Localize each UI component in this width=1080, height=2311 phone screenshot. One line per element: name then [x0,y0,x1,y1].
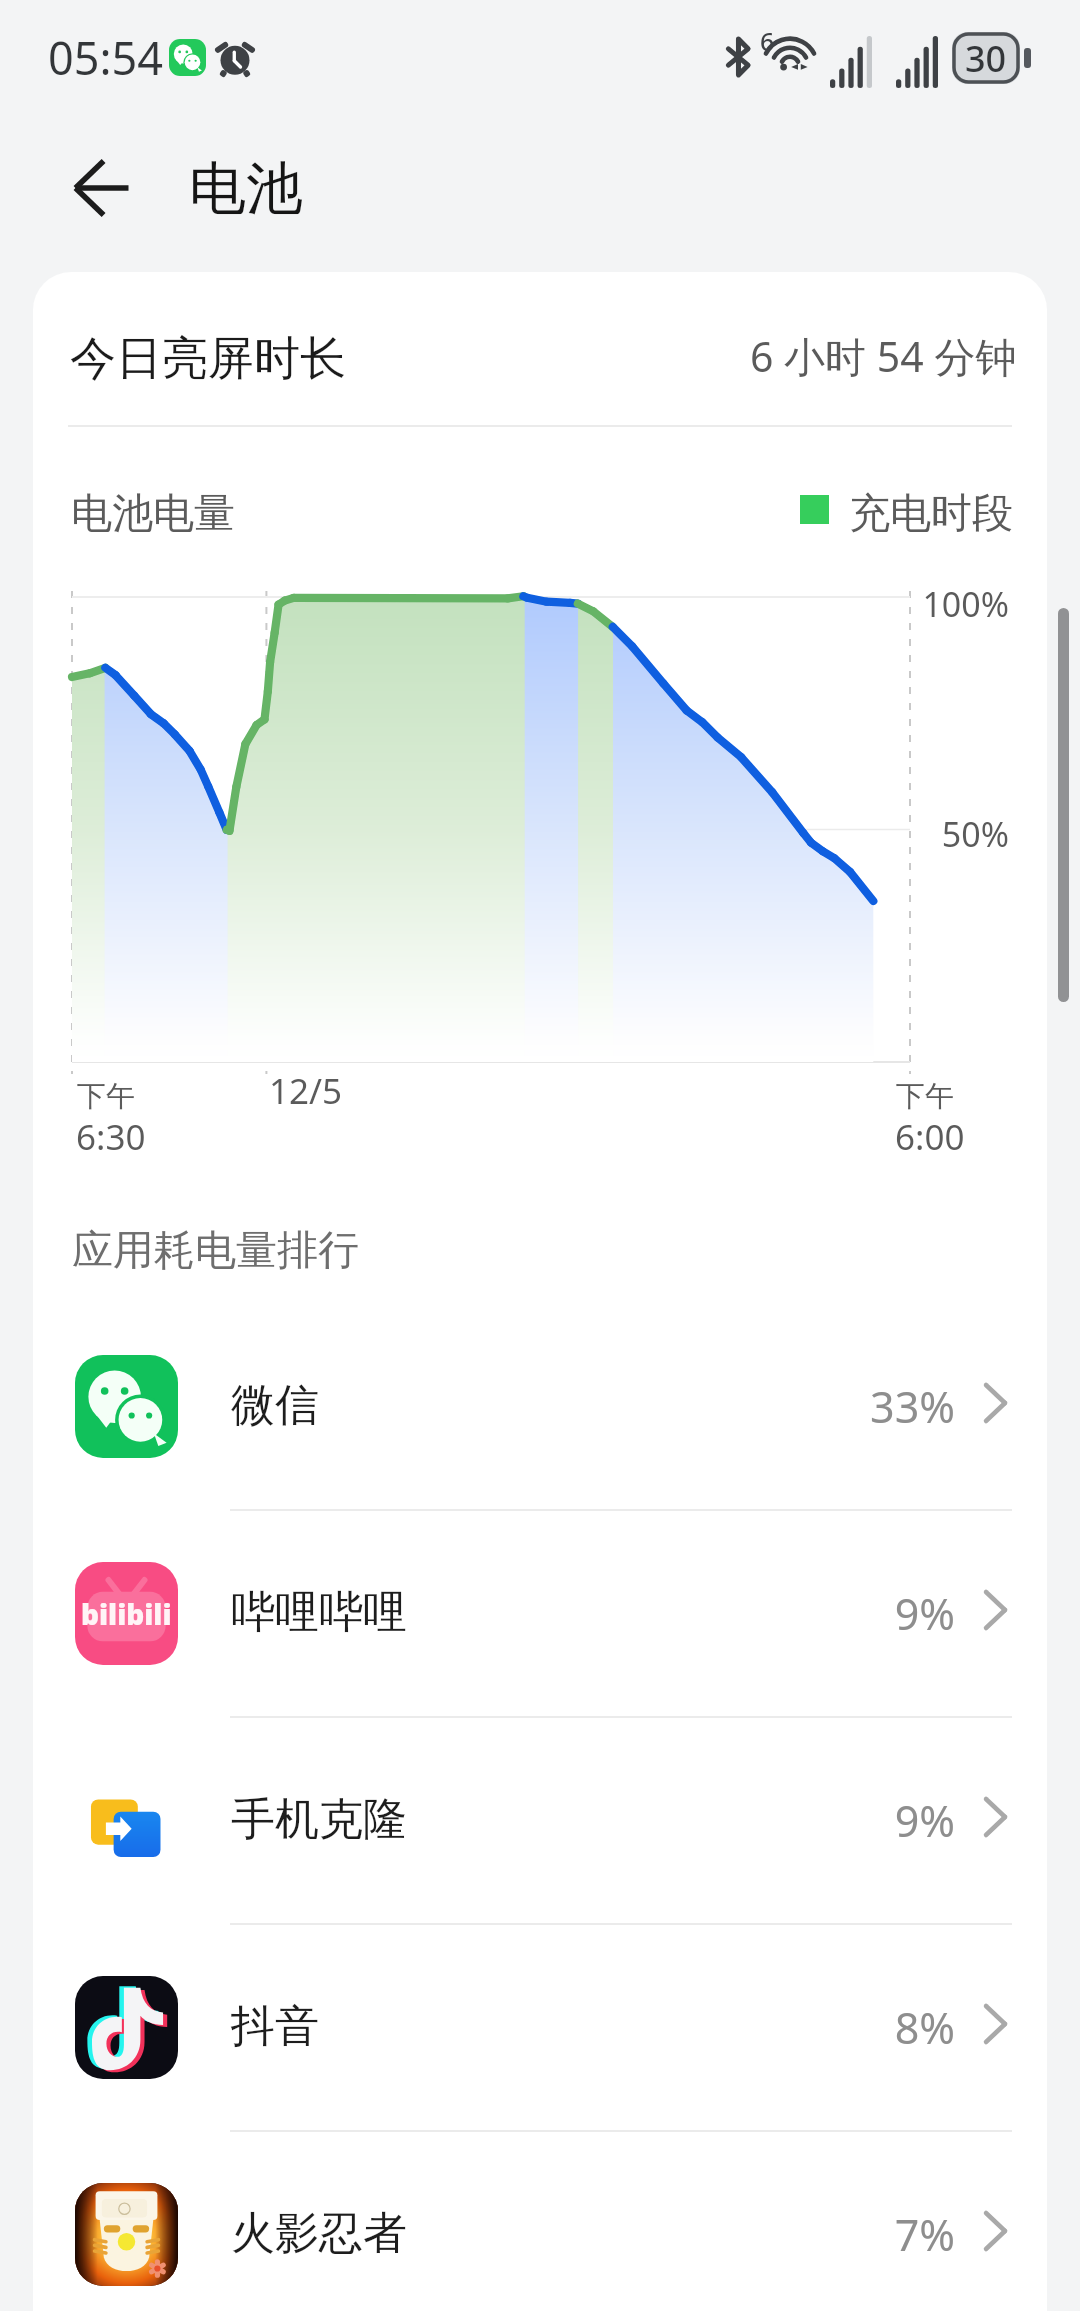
staticText: 下午 [77,1078,135,1115]
staticText: 抖音 [231,1999,319,2054]
staticText: 12/5 [269,1067,343,1115]
staticText: 电池电量 [71,488,235,540]
button[interactable]: Back [54,140,150,236]
staticText: bilibili [81,1595,172,1633]
button[interactable]: 火影忍者 [33,2131,1047,2311]
staticText: 6:00 [895,1113,965,1161]
staticText: 05:54 [48,27,164,88]
staticText: 50% [809,811,1009,857]
staticText: 9% [733,1791,955,1850]
button[interactable]: 微信 [33,1303,1047,1509]
staticText: 7% [733,2205,955,2264]
staticText: 火影忍者 [231,2206,407,2261]
staticText: 今日亮屏时长 [70,330,346,388]
staticText: 9% [733,1584,955,1643]
staticText: 下午 [896,1078,954,1115]
staticText: 6 [760,24,775,58]
button[interactable]: 抖音 [33,1924,1047,2130]
staticText: 33% [733,1377,955,1436]
staticText: 微信 [231,1378,319,1433]
staticText: 8% [733,1998,955,2057]
staticText: 6 小时 54 分钟 [750,328,1017,384]
staticText: 30 [965,34,1007,83]
staticText: 6:30 [76,1113,146,1161]
button[interactable]: 手机克隆 [33,1717,1047,1923]
staticText: 充电时段 [849,488,1013,540]
button[interactable]: bilibili [33,1510,1047,1716]
staticText: 电池 [189,153,303,225]
staticText: 应用耗电量排行 [72,1225,359,1277]
staticText: 哔哩哔哩 [231,1585,407,1640]
staticText: 100% [809,581,1009,627]
staticText: 手机克隆 [231,1792,407,1847]
